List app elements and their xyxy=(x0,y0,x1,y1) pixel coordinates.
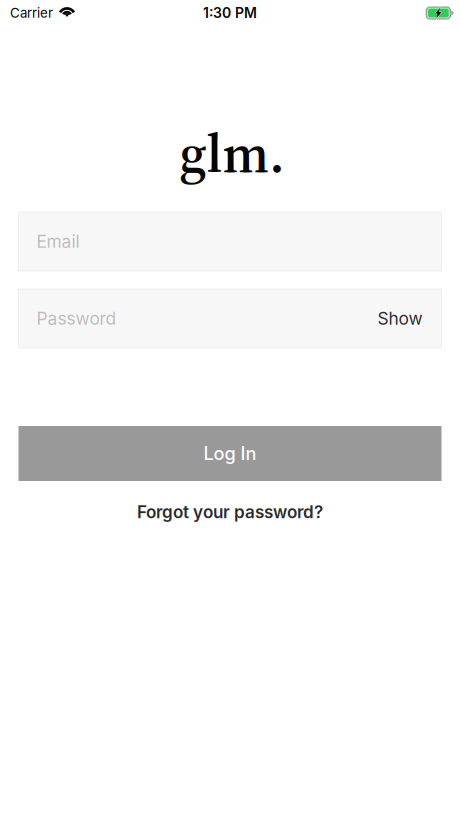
button[interactable]: Log In xyxy=(18,426,441,481)
staticText: Carrier xyxy=(10,5,53,21)
staticText: Show xyxy=(377,308,422,329)
staticText: 1:30 PM xyxy=(203,4,257,21)
staticText: glm. xyxy=(179,116,284,189)
staticText: Log In xyxy=(203,442,256,464)
button[interactable]: Show xyxy=(377,308,422,329)
button[interactable]: Forgot your password? xyxy=(18,502,441,522)
staticText: Email xyxy=(36,231,79,252)
staticText: Password xyxy=(36,308,116,329)
button[interactable]: Password xyxy=(18,289,441,348)
staticText: Forgot your password? xyxy=(137,502,323,522)
button[interactable]: Email xyxy=(18,212,441,271)
